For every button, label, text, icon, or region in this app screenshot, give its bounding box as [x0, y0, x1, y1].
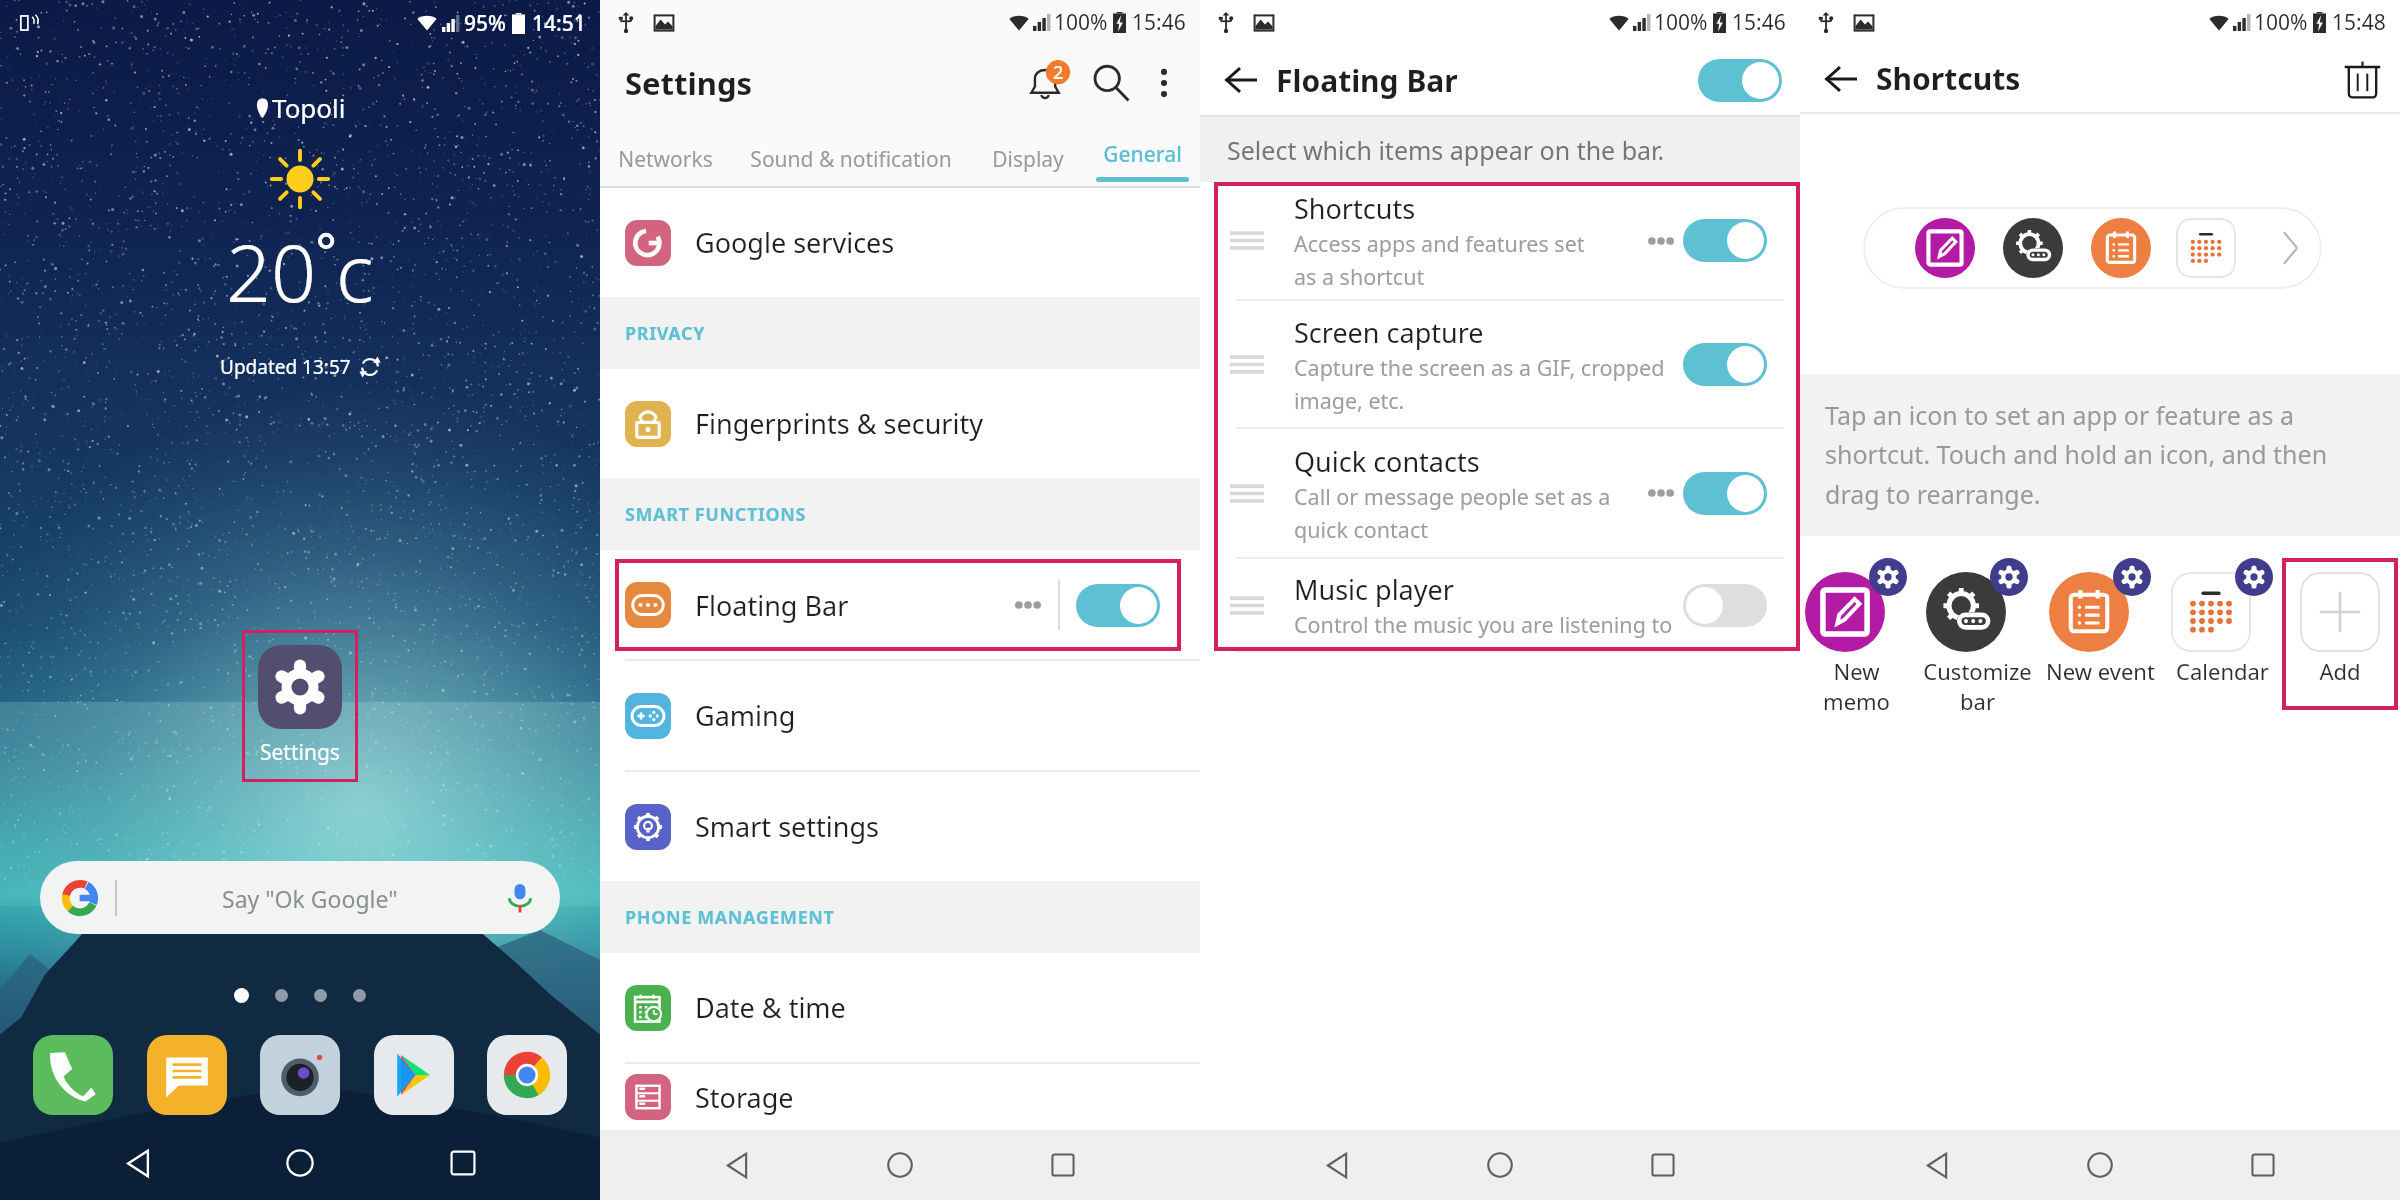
staticText: Gaming: [695, 697, 796, 734]
button[interactable]: Google services: [625, 188, 1200, 297]
staticText: Add: [2319, 656, 2361, 686]
button[interactable]: Camera: [260, 1035, 340, 1115]
button[interactable]: Toggle: [1683, 219, 1767, 262]
staticText: General: [1103, 140, 1182, 169]
staticText: 15:48: [2332, 8, 2386, 37]
button[interactable]: Play Store: [374, 1035, 454, 1115]
staticText: PHONE MANAGEMENT: [625, 905, 835, 930]
button[interactable]: Recents: [438, 1138, 488, 1188]
button[interactable]: Delete: [2338, 55, 2386, 103]
staticText: Floating Bar: [695, 587, 849, 624]
staticText: Access apps and features set as a shortc…: [1294, 229, 1585, 291]
button[interactable]: Floating Bar: [615, 559, 1181, 651]
button[interactable]: Date & time: [625, 953, 1200, 1062]
button[interactable]: Home: [275, 1138, 325, 1188]
button[interactable]: Toggle: [1076, 584, 1160, 627]
button[interactable]: Quick contacts: [1214, 429, 1800, 557]
button[interactable]: Notifications: [1023, 57, 1075, 109]
button[interactable]: Calendar: [2147, 558, 2297, 686]
button[interactable]: General: [1084, 120, 1200, 186]
staticText: Floating Bar: [1276, 60, 1458, 101]
staticText: Control the music you are listening to: [1294, 610, 1673, 639]
button[interactable]: More options: [1142, 61, 1186, 105]
button[interactable]: Back: [1819, 57, 1863, 101]
staticText: 95%: [464, 9, 506, 38]
button[interactable]: Home: [1474, 1139, 1526, 1191]
staticText: Settings: [625, 62, 753, 104]
button[interactable]: Phone: [33, 1035, 113, 1115]
button[interactable]: Back: [1311, 1139, 1363, 1191]
button[interactable]: Storage: [625, 1064, 1200, 1130]
staticText: c: [336, 218, 374, 326]
button[interactable]: Sound & notification: [730, 120, 971, 186]
button[interactable]: New memo: [1781, 558, 1931, 714]
staticText: Quick contacts: [1294, 443, 1480, 480]
button[interactable]: Recents: [1037, 1139, 1089, 1191]
staticText: 15:46: [1132, 8, 1186, 37]
button[interactable]: Floating bar preview: [1863, 207, 2322, 289]
staticText: Sound & notification: [750, 145, 952, 174]
staticText: 20: [226, 218, 317, 326]
staticText: Google services: [695, 224, 895, 261]
staticText: Screen capture: [1294, 314, 1484, 351]
staticText: New event: [2046, 656, 2155, 686]
button[interactable]: Back: [113, 1138, 163, 1188]
button[interactable]: Gaming: [625, 661, 1200, 770]
staticText: Fingerprints & security: [695, 405, 983, 442]
button[interactable]: Floating bar items: [1214, 182, 1800, 651]
staticText: Topoli: [272, 90, 346, 125]
button[interactable]: Screen capture: [1214, 301, 1800, 427]
button[interactable]: Toggle: [1683, 343, 1767, 386]
button[interactable]: Customize bar: [1902, 558, 2052, 714]
staticText: Updated 13:57: [220, 354, 351, 380]
staticText: 100%: [1054, 8, 1108, 37]
staticText: Smart settings: [695, 808, 879, 845]
button[interactable]: Home: [874, 1139, 926, 1191]
staticText: Call or message people set as a quick co…: [1294, 482, 1611, 544]
staticText: 2: [1053, 60, 1064, 85]
button[interactable]: Back: [711, 1139, 763, 1191]
staticText: Select which items appear on the bar.: [1227, 133, 1665, 167]
button[interactable]: Chrome: [487, 1035, 567, 1115]
button[interactable]: Smart settings: [625, 772, 1200, 881]
staticText: 14:51: [532, 9, 586, 38]
button[interactable]: Networks: [600, 120, 730, 186]
staticText: 100%: [2254, 8, 2308, 37]
button[interactable]: Fingerprints & security: [625, 369, 1200, 478]
button[interactable]: Toggle: [1683, 584, 1767, 627]
button[interactable]: Home: [2074, 1139, 2126, 1191]
staticText: Say "Ok Google": [222, 883, 398, 914]
button[interactable]: Toggle: [1698, 59, 1782, 102]
staticText: Tap an icon to set an app or feature as …: [1825, 398, 2378, 512]
staticText: Shortcuts: [1294, 190, 1416, 227]
staticText: Shortcuts: [1876, 58, 2021, 99]
button[interactable]: Add: [2282, 558, 2398, 710]
staticText: Storage: [695, 1079, 794, 1116]
button[interactable]: Search: [1086, 58, 1136, 108]
staticText: PRIVACY: [625, 321, 706, 346]
button[interactable]: New event: [2025, 558, 2175, 686]
button[interactable]: Search with Google: [40, 861, 560, 934]
button[interactable]: Back: [1911, 1139, 1963, 1191]
staticText: Date & time: [695, 989, 846, 1026]
button[interactable]: Display: [971, 120, 1084, 186]
staticText: Settings: [260, 738, 340, 767]
button[interactable]: Shortcuts: [1214, 182, 1800, 299]
staticText: Calendar: [2176, 656, 2269, 686]
staticText: Display: [992, 145, 1064, 174]
staticText: Capture the screen as a GIF, cropped ima…: [1294, 353, 1665, 415]
staticText: Customize bar: [1923, 656, 2032, 714]
button[interactable]: Toggle: [1683, 472, 1767, 515]
button[interactable]: Settings: [242, 630, 358, 782]
staticText: 15:46: [1732, 8, 1786, 37]
button[interactable]: Recents: [1637, 1139, 1689, 1191]
staticText: Networks: [618, 145, 713, 174]
staticText: 100%: [1654, 8, 1708, 37]
staticText: New memo: [1823, 656, 1890, 714]
staticText: SMART FUNCTIONS: [625, 502, 807, 527]
button[interactable]: Recents: [2237, 1139, 2289, 1191]
button[interactable]: Music player: [1214, 559, 1800, 651]
button[interactable]: Back: [1219, 58, 1263, 102]
button[interactable]: Messages: [147, 1035, 227, 1115]
staticText: Music player: [1294, 571, 1454, 608]
